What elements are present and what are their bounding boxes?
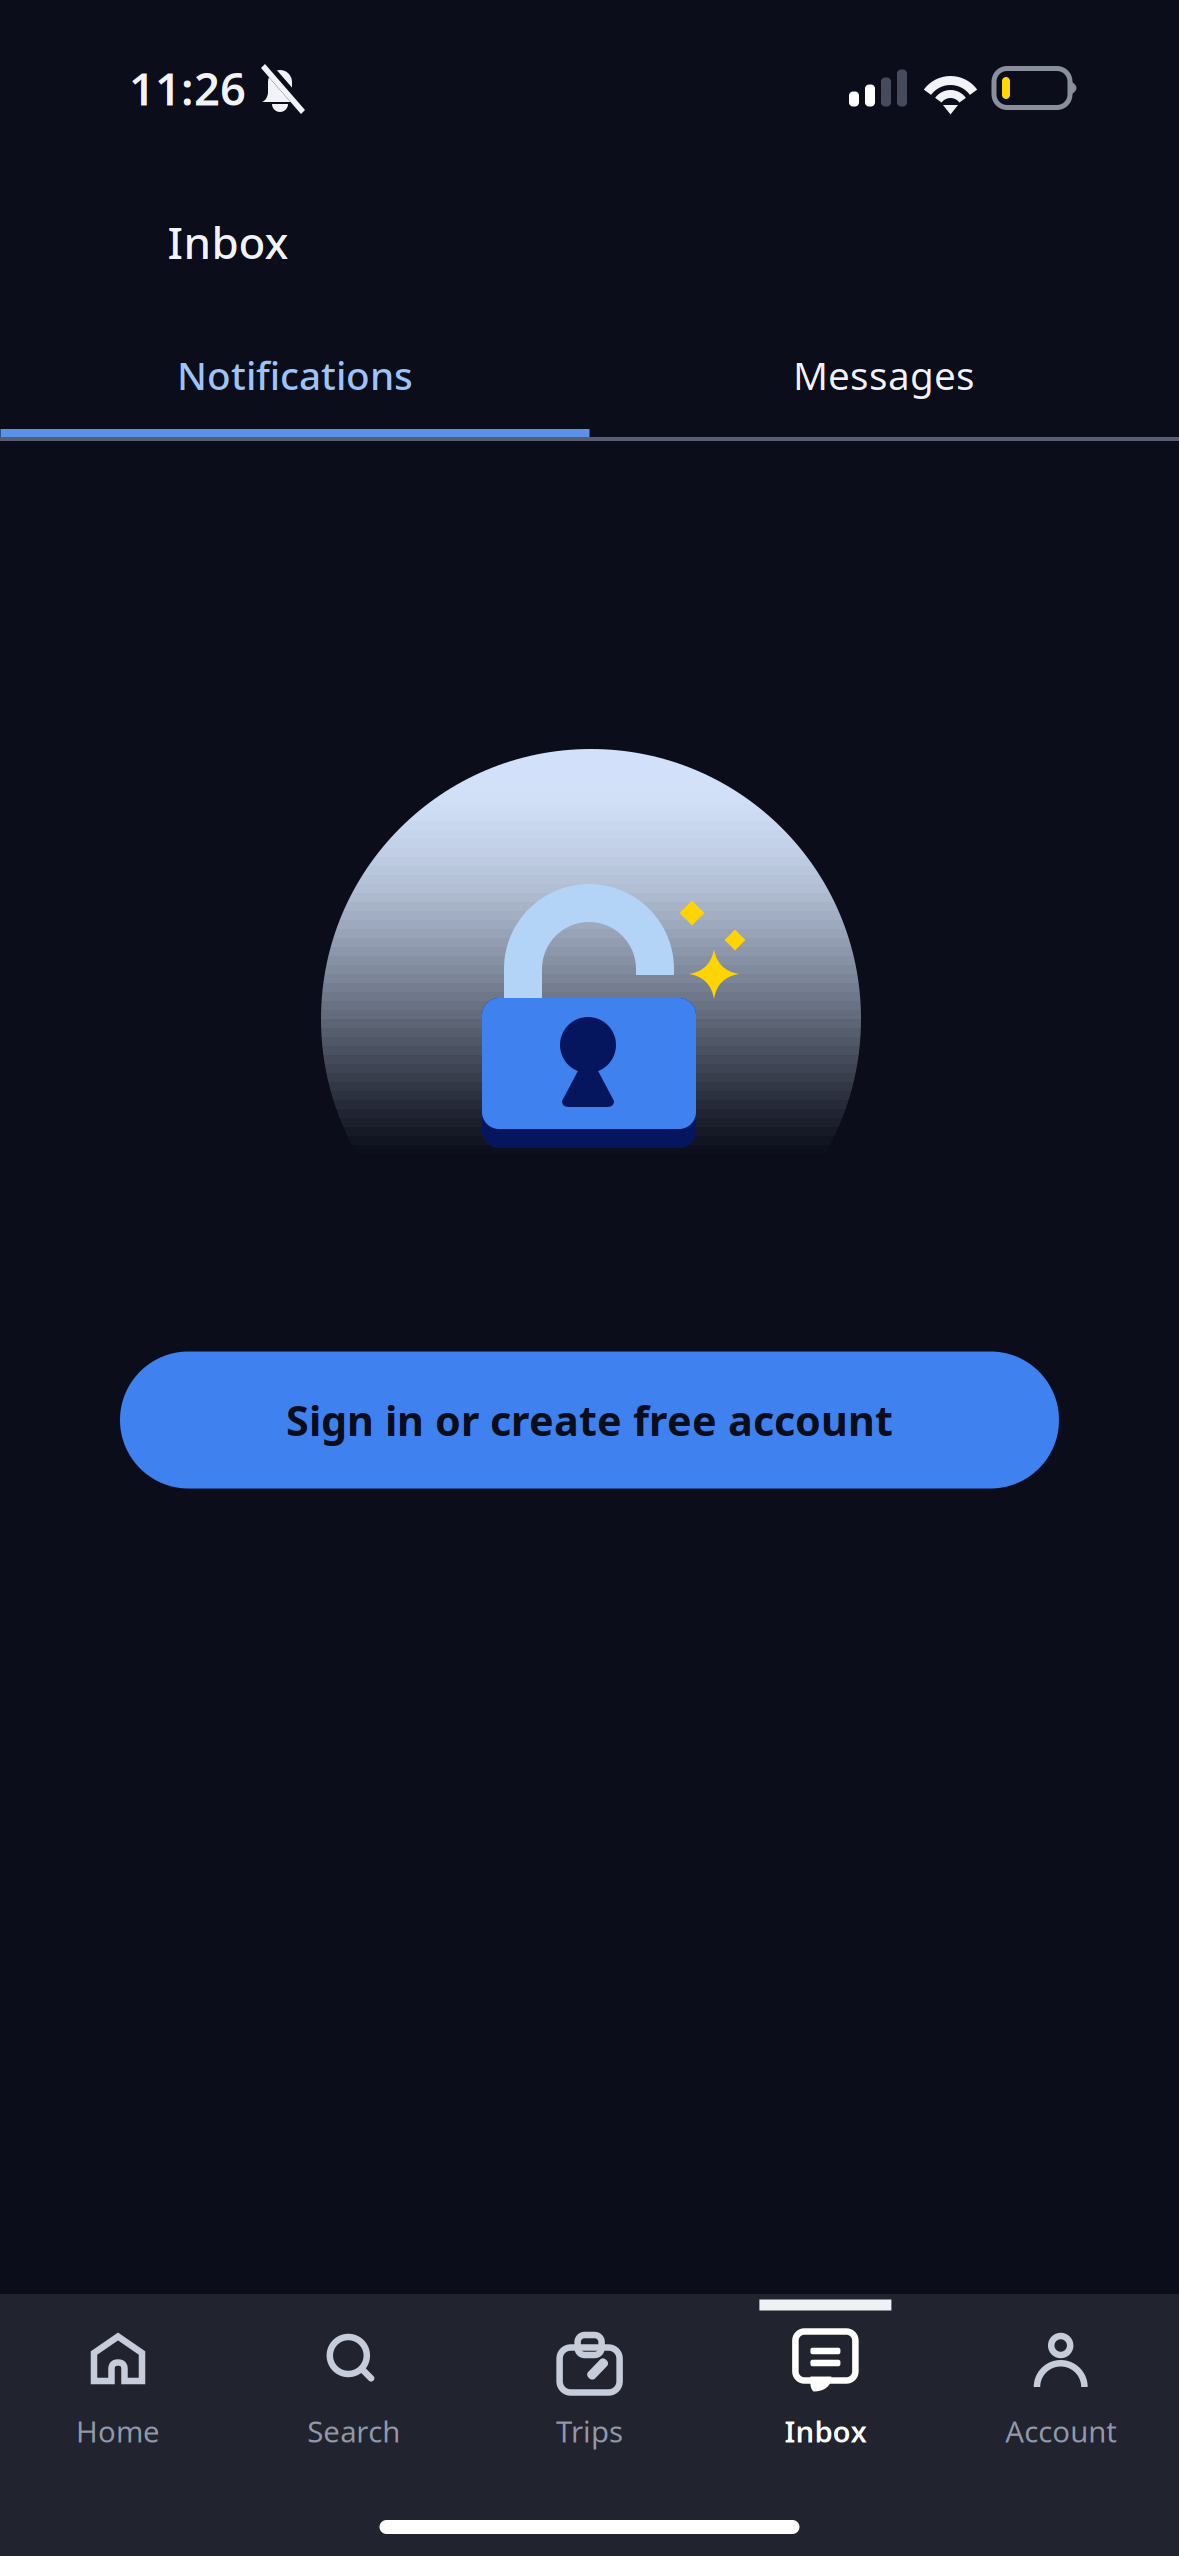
staticText: Sign in or create free account [286, 1393, 893, 1447]
button[interactable]: Messages [589, 295, 1178, 455]
button[interactable]: Trips [472, 2294, 707, 2466]
staticText: Home [76, 2411, 160, 2450]
staticText: Account [1005, 2411, 1117, 2450]
staticText: Trips [556, 2411, 623, 2450]
button[interactable]: Inbox [707, 2294, 943, 2466]
button[interactable]: Home [0, 2294, 236, 2466]
button[interactable]: Sign in or create free account [120, 1351, 1059, 1488]
staticText: Notifications [177, 349, 413, 401]
button[interactable]: Account [943, 2294, 1179, 2466]
button[interactable]: Notifications [0, 295, 589, 455]
button[interactable]: Search [236, 2294, 472, 2466]
staticText: 11:26 [129, 58, 246, 118]
staticText: Messages [793, 349, 975, 401]
staticText: Inbox [784, 2411, 866, 2450]
staticText: Search [307, 2411, 400, 2450]
staticText: Inbox [167, 213, 288, 271]
